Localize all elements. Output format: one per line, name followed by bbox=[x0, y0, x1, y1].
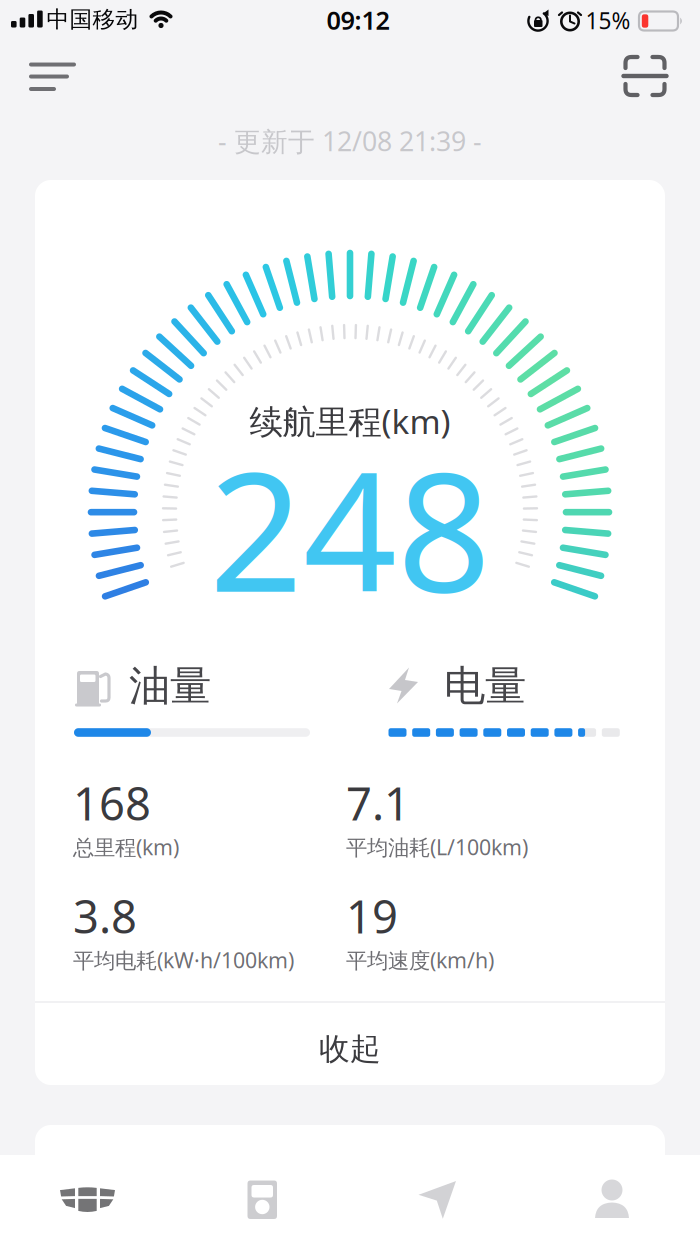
staticText: 油量 bbox=[129, 661, 211, 711]
staticText: 平均速度(km/h) bbox=[346, 946, 494, 974]
staticText: 7.1 bbox=[346, 773, 410, 833]
staticText: 168 bbox=[73, 773, 151, 833]
staticText: 248 bbox=[209, 419, 491, 637]
button[interactable]: Charging bbox=[197, 1165, 327, 1235]
button[interactable]: Vehicle bbox=[22, 1165, 152, 1235]
staticText: 中国移动 bbox=[46, 6, 138, 33]
staticText: 09:12 bbox=[326, 3, 389, 37]
staticText: 15% bbox=[585, 5, 630, 35]
staticText: 19 bbox=[346, 886, 398, 946]
staticText: 续航里程(km) bbox=[249, 399, 450, 443]
staticText: - 更新于 12/08 21:39 - bbox=[218, 123, 482, 159]
staticText: 平均电耗(kW·h/100km) bbox=[73, 946, 294, 974]
staticText: 平均油耗(L/100km) bbox=[346, 833, 528, 861]
button[interactable]: 收起 bbox=[35, 1008, 665, 1090]
button[interactable]: Menu bbox=[29, 59, 77, 94]
button[interactable]: Navigation bbox=[372, 1165, 502, 1235]
staticText: 总里程(km) bbox=[73, 833, 179, 861]
staticText: 收起 bbox=[319, 1030, 381, 1068]
staticText: 3.8 bbox=[73, 886, 137, 946]
button[interactable]: Scan bbox=[621, 54, 668, 98]
button[interactable]: Profile bbox=[547, 1164, 677, 1234]
staticText: 电量 bbox=[444, 661, 526, 711]
